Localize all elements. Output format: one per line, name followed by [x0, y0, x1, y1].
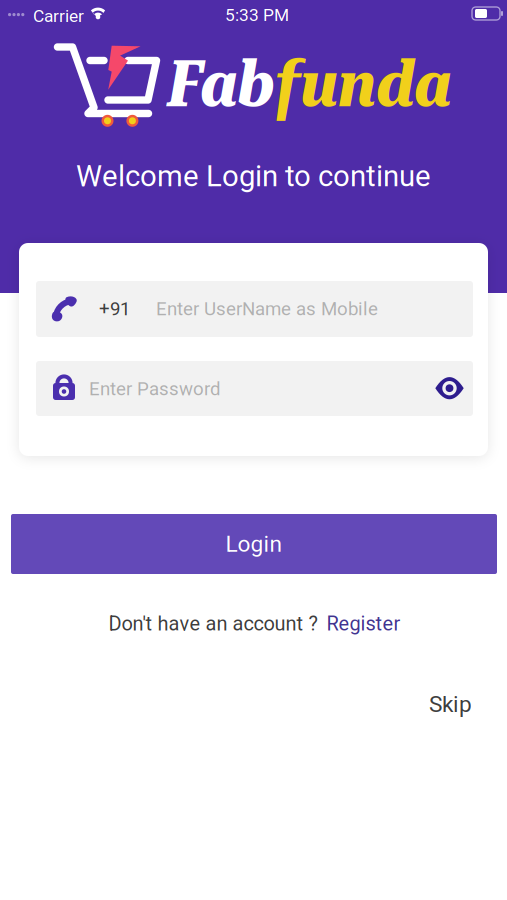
staticText: Login — [225, 531, 282, 557]
staticText: Enter UserName as Mobile — [156, 298, 378, 320]
staticText: Skip — [429, 691, 472, 718]
button[interactable]: Register — [326, 612, 400, 635]
button[interactable]: Login — [11, 514, 497, 574]
staticText: Enter Password — [89, 378, 221, 400]
staticText: Register — [326, 612, 400, 635]
button[interactable]: Skip — [429, 691, 472, 718]
staticText: +91 — [99, 298, 130, 320]
staticText: Fab — [168, 47, 275, 122]
staticText: Carrier — [33, 6, 84, 26]
staticText: Welcome Login to continue — [76, 159, 431, 193]
staticText: 5:33 PM — [225, 5, 289, 25]
staticText: funda — [275, 47, 451, 122]
staticText: Don't have an account ? — [108, 612, 317, 635]
